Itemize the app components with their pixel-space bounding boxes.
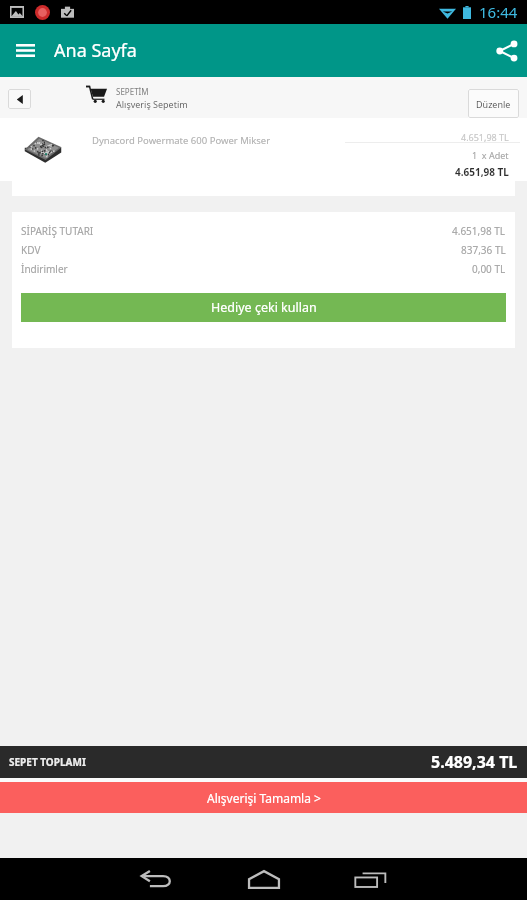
button[interactable]: Recents: [317, 858, 424, 900]
staticText: 0,00 TL: [472, 262, 506, 276]
button[interactable]: Back: [8, 89, 31, 109]
staticText: Alışveriş Sepetim: [116, 98, 188, 110]
staticText: 5.489,34 TL: [431, 751, 518, 773]
button[interactable]: Back: [103, 858, 210, 900]
staticText: 4.651,98 TL: [455, 165, 509, 179]
button[interactable]: Alışverişi Tamamla >: [0, 782, 527, 813]
staticText: SİPARİŞ TUTARI: [21, 224, 94, 238]
staticText: Düzenle: [476, 98, 511, 110]
staticText: SEPET TOPLAMI: [9, 755, 86, 769]
staticText: Ana Sayfa: [54, 38, 137, 63]
button[interactable]: Düzenle: [468, 89, 519, 118]
staticText: Dynacord Powermate 600 Power Mikser: [92, 134, 271, 147]
staticText: 4.651,98 TL: [452, 224, 506, 238]
button[interactable]: Home: [210, 858, 317, 900]
button[interactable]: Hediye çeki kullan: [21, 293, 506, 322]
staticText: 837,36 TL: [461, 243, 506, 257]
staticText: 4.651,98 TL: [461, 131, 509, 143]
staticText: KDV: [21, 243, 41, 257]
staticText: Hediye çeki kullan: [211, 299, 317, 316]
staticText: İndirimler: [21, 262, 68, 276]
button[interactable]: Share: [486, 24, 527, 77]
staticText: Alışverişi Tamamla >: [207, 790, 321, 806]
button[interactable]: Menu: [0, 24, 50, 77]
staticText: 1 x Adet: [472, 149, 509, 161]
staticText: 16:44: [479, 2, 518, 22]
staticText: SEPETİM: [116, 86, 149, 97]
